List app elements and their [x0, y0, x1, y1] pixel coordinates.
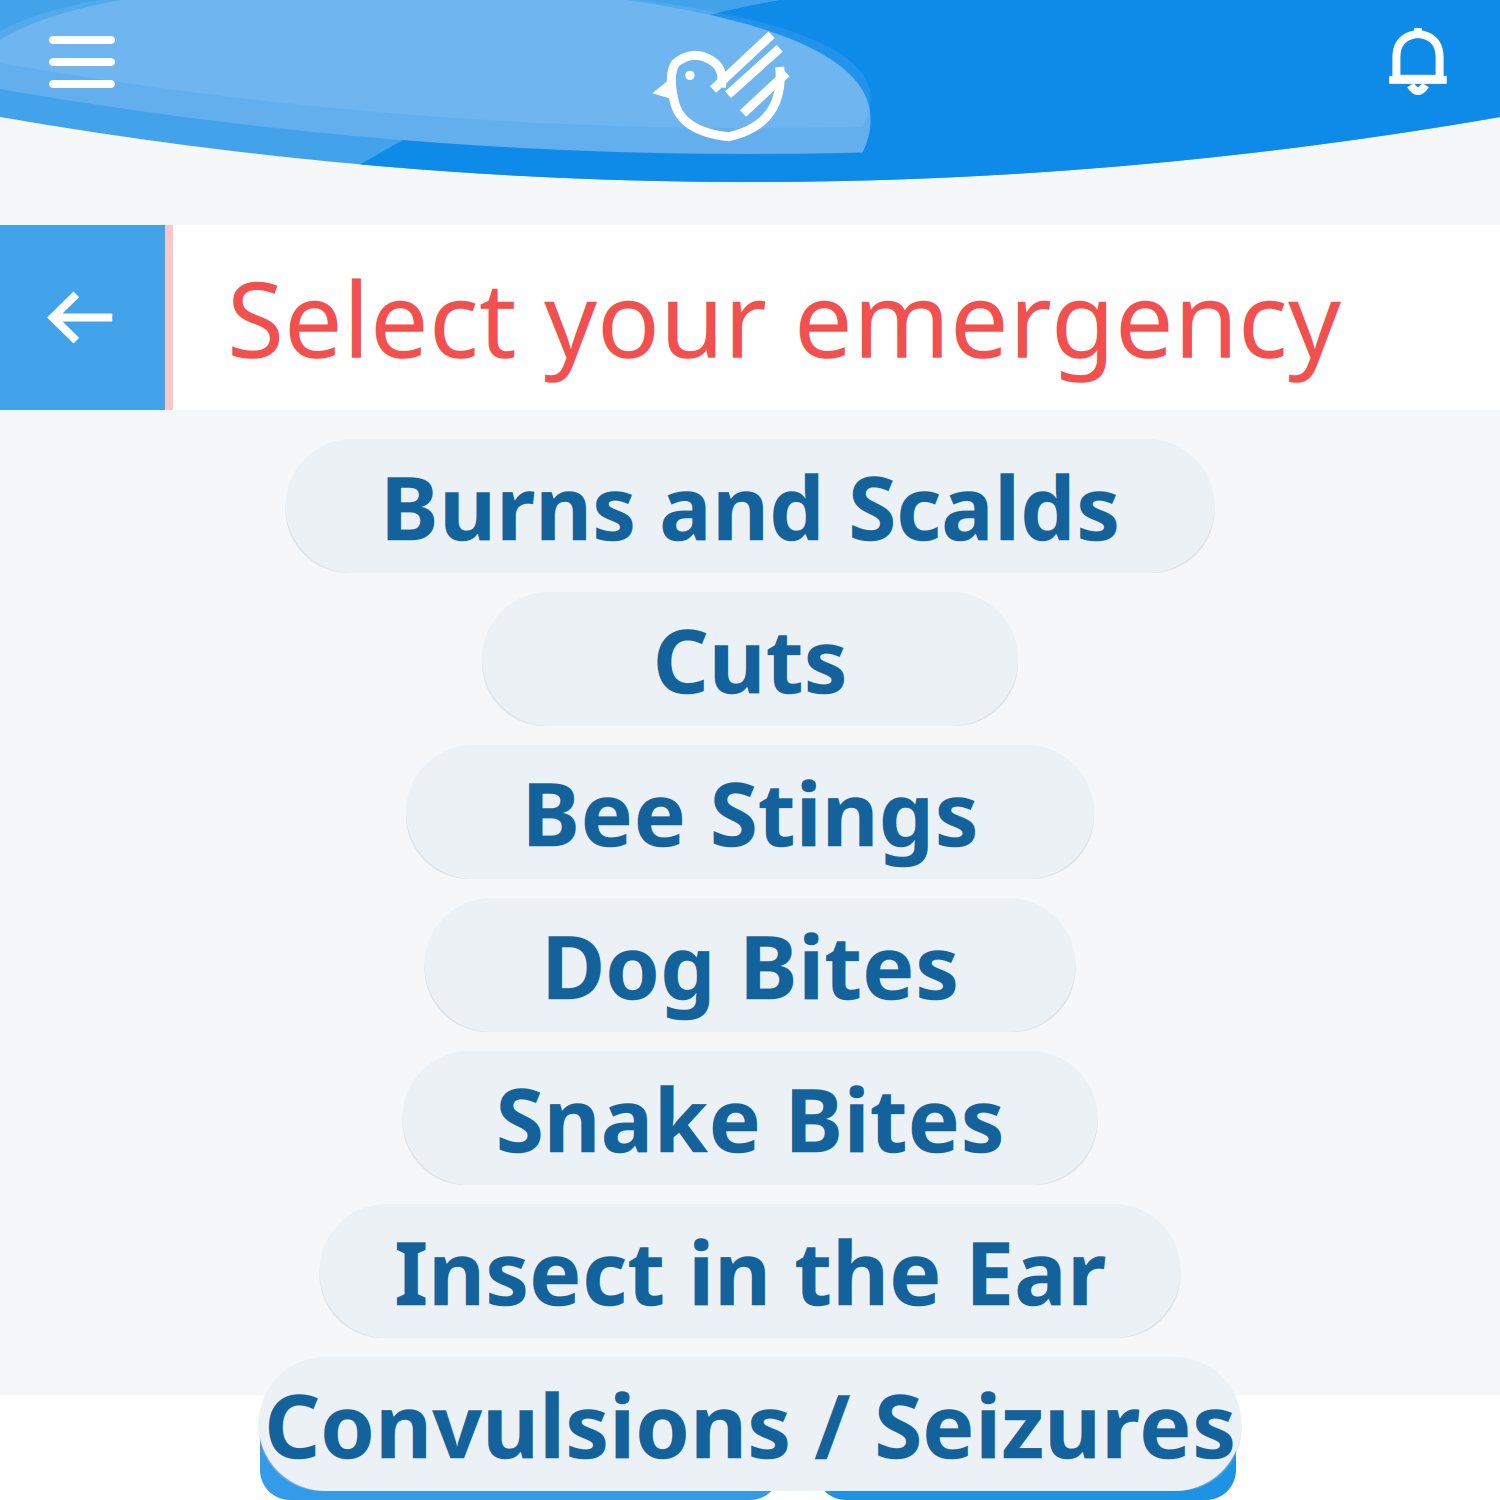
button[interactable]: Notifications	[1358, 2, 1478, 122]
button[interactable]: Bee Stings	[406, 745, 1094, 879]
staticText: Snake Bites	[495, 1060, 1004, 1176]
staticText: Convulsions / Seizures	[264, 1366, 1236, 1482]
button[interactable]: Cuts	[482, 592, 1018, 726]
staticText: Insect in the Ear	[394, 1213, 1106, 1329]
button[interactable]: Back	[0, 225, 165, 410]
staticText: Burns and Scalds	[380, 448, 1120, 564]
button[interactable]: Burns and Scalds	[285, 439, 1214, 573]
staticText: Select your emergency	[227, 248, 1341, 386]
staticText: Cuts	[652, 601, 847, 717]
button[interactable]: Menu	[22, 2, 142, 122]
staticText: Dog Bites	[541, 907, 959, 1023]
button[interactable]: Find help nearby	[816, 1404, 1236, 1500]
staticText: Bee Stings	[521, 754, 978, 870]
button[interactable]: Convulsions / Seizures	[258, 1357, 1241, 1491]
button[interactable]: Dog Bites	[424, 898, 1075, 1032]
button[interactable]: Insect in the Ear	[319, 1204, 1180, 1338]
button[interactable]: Emergency call	[260, 1404, 780, 1500]
button[interactable]: Snake Bites	[402, 1051, 1097, 1185]
